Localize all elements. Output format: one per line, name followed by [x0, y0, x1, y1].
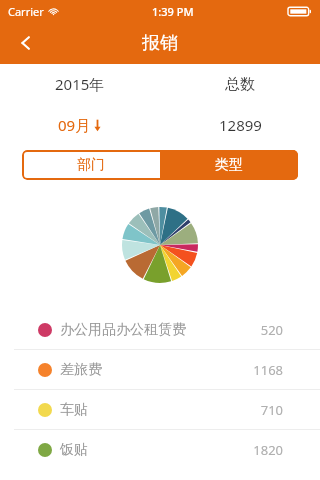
button[interactable]: 饭贴 — [0, 430, 320, 469]
staticText: 饭贴 — [60, 441, 88, 459]
staticText: 部门 — [77, 156, 105, 174]
staticText: 2015年 — [55, 74, 105, 94]
staticText: 总数 — [225, 75, 255, 94]
staticText: 1820 — [253, 441, 283, 459]
button[interactable]: 差旅费 — [0, 350, 320, 389]
button[interactable]: 车贴 — [0, 390, 320, 429]
button[interactable]: Back — [8, 25, 44, 61]
staticText: 12899 — [219, 115, 262, 135]
staticText: Carrier — [8, 4, 44, 19]
staticText: 09月 — [58, 115, 91, 135]
staticText: 1168 — [253, 361, 283, 379]
staticText: 办公用品办公租赁费 — [60, 321, 186, 339]
staticText: 1:39 PM — [152, 4, 194, 19]
button[interactable]: 类型 — [160, 150, 298, 180]
button[interactable]: 部门 — [22, 150, 160, 180]
staticText: 差旅费 — [60, 361, 102, 379]
staticText: 车贴 — [60, 401, 88, 419]
staticText: 报销 — [142, 32, 178, 55]
button[interactable]: 09月 — [58, 115, 102, 135]
staticText: 520 — [260, 321, 283, 339]
button[interactable]: 办公用品办公租赁费 — [0, 310, 320, 349]
staticText: 710 — [260, 401, 283, 419]
staticText: 类型 — [215, 156, 243, 174]
